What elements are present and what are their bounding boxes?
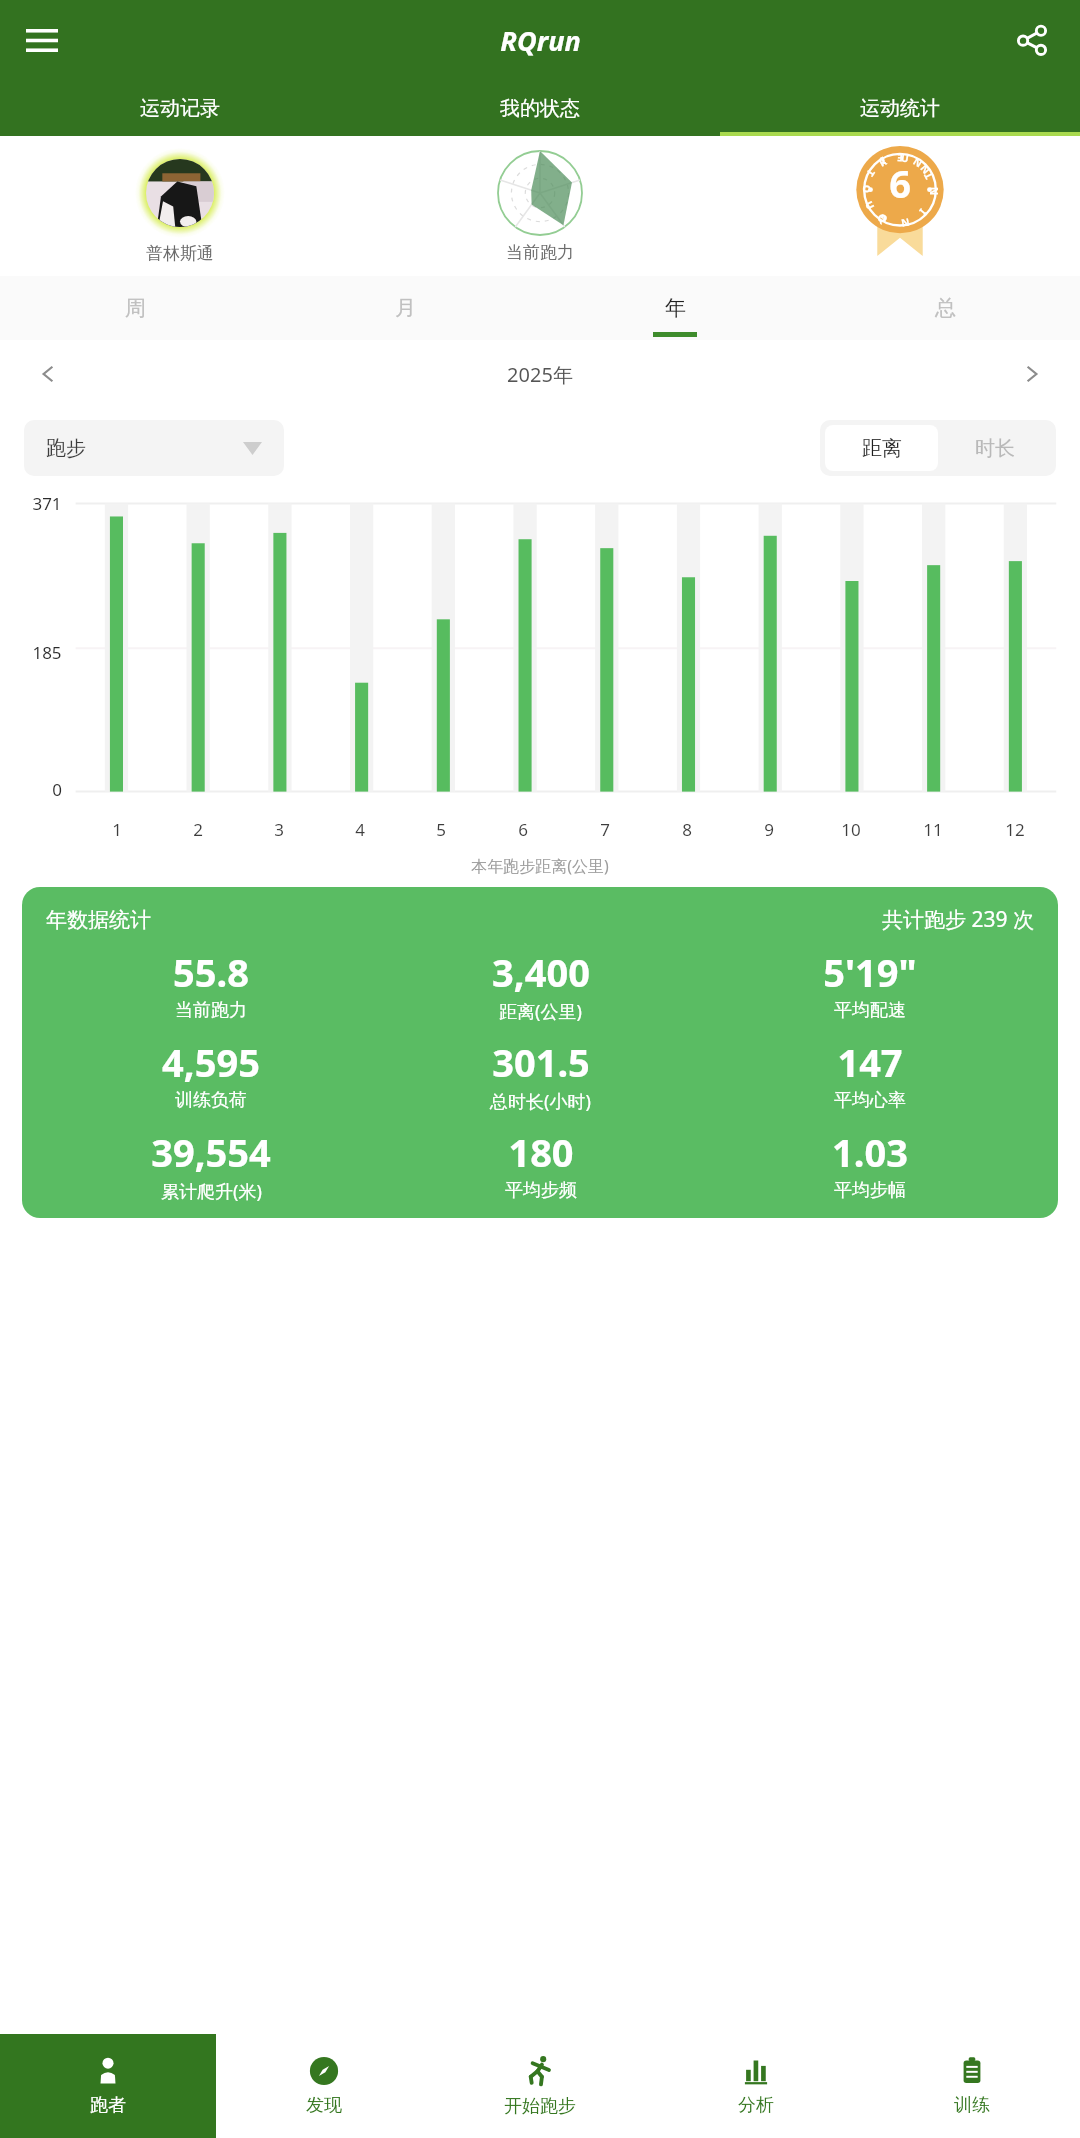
staticText: R [876, 154, 889, 170]
button[interactable]: 我的状态 [360, 80, 720, 136]
staticText: 4 [355, 818, 365, 841]
button[interactable]: 发现 [216, 2034, 432, 2138]
button[interactable]: 训练 [864, 2034, 1080, 2138]
button[interactable]: R [720, 144, 1080, 268]
staticText: 10 [841, 818, 861, 841]
staticText: 平均步频 [505, 1179, 577, 1202]
staticText: 年数据统计 [46, 907, 151, 933]
staticText: 55.8 [173, 946, 249, 998]
staticText: 总时长(小时) [490, 1089, 591, 1114]
staticText: 普林斯通 [146, 243, 214, 264]
staticText: 分析 [738, 2094, 774, 2117]
staticText: 3,400 [492, 946, 590, 998]
staticText: 5'19" [823, 946, 917, 998]
button[interactable]: 年数据统计 [22, 887, 1058, 1218]
button[interactable]: 开始跑步 [432, 2034, 648, 2138]
staticText: E [897, 151, 903, 165]
button[interactable]: 周 [0, 276, 270, 340]
staticText: 301.5 [492, 1036, 590, 1088]
button[interactable]: 距离 [825, 425, 938, 471]
staticText: 距离 [862, 436, 902, 461]
staticText: 371 [32, 492, 62, 515]
staticText: 5 [436, 818, 446, 841]
staticText: 147 [837, 1036, 903, 1088]
button[interactable]: Share [1004, 12, 1060, 68]
staticText: 2 [193, 818, 203, 841]
staticText: 6 [518, 818, 528, 841]
staticText: 0 [52, 778, 62, 801]
staticText: 1.03 [832, 1126, 908, 1178]
staticText: 开始跑步 [504, 2095, 576, 2118]
staticText: 年 [665, 295, 686, 321]
staticText: U [900, 150, 910, 166]
button[interactable]: 时长 [938, 425, 1051, 471]
staticText: I [916, 206, 930, 218]
staticText: N [926, 186, 940, 195]
button[interactable]: Previous year [0, 340, 96, 408]
staticText: 9 [764, 818, 774, 841]
staticText: 平均心率 [834, 1089, 906, 1112]
staticText: 8 [682, 818, 692, 841]
button[interactable]: 普林斯通 [0, 148, 360, 264]
button[interactable]: 跑步 [24, 420, 284, 476]
staticText: 我的状态 [500, 96, 580, 121]
staticText: 平均步幅 [834, 1179, 906, 1202]
staticText: 1 [112, 818, 122, 841]
staticText: 周 [125, 295, 146, 321]
staticText: U [862, 198, 878, 212]
staticText: 180 [508, 1126, 574, 1178]
button[interactable]: 月 [270, 276, 540, 340]
staticText: I [878, 154, 888, 168]
staticText: 当前跑力 [506, 242, 574, 263]
staticText: 4,595 [162, 1036, 260, 1088]
button[interactable]: 分析 [648, 2034, 864, 2138]
button[interactable]: 运动统计 [720, 80, 1080, 136]
staticText: 距离(公里) [499, 999, 582, 1024]
staticText: 月 [395, 295, 416, 321]
staticText: 39,554 [151, 1126, 271, 1178]
staticText: N [910, 155, 925, 171]
button[interactable]: 运动记录 [0, 80, 360, 136]
staticText: 7 [600, 818, 610, 841]
staticText: 运动统计 [860, 96, 940, 121]
staticText: 训练负荷 [175, 1089, 247, 1112]
staticText: 11 [923, 818, 943, 841]
button[interactable]: Menu [14, 12, 70, 68]
staticText: O [860, 185, 874, 193]
staticText: 本年跑步距离(公里) [471, 855, 609, 877]
button[interactable]: 年 [540, 276, 810, 340]
button[interactable]: 当前跑力 [360, 149, 720, 263]
staticText: 跑步 [46, 436, 86, 461]
staticText: 185 [32, 641, 62, 664]
button[interactable]: Next year [984, 340, 1080, 408]
staticText: 跑者 [90, 2094, 126, 2117]
button[interactable]: 总 [810, 276, 1080, 340]
staticText: 运动记录 [140, 96, 220, 121]
staticText: 训练 [954, 2094, 990, 2117]
staticText: 2025年 [507, 361, 573, 388]
staticText: N [900, 215, 911, 231]
staticText: 12 [1005, 818, 1025, 841]
staticText: 当前跑力 [175, 999, 247, 1022]
staticText: G [876, 211, 890, 227]
staticText: RQrun [500, 22, 581, 59]
staticText: 平均配速 [834, 999, 906, 1022]
staticText: 时长 [975, 436, 1015, 461]
staticText: 发现 [306, 2094, 342, 2117]
staticText: 累计爬升(米) [161, 1179, 262, 1204]
staticText: T [863, 167, 878, 179]
staticText: 共计跑步 239 次 [882, 905, 1034, 934]
staticText: Q [875, 210, 889, 226]
staticText: T [920, 170, 936, 182]
staticText: 3 [274, 818, 284, 841]
staticText: N [917, 161, 934, 177]
button[interactable]: 跑者 [0, 2034, 216, 2138]
staticText: 总 [935, 295, 956, 321]
staticText: 6 [889, 157, 911, 209]
